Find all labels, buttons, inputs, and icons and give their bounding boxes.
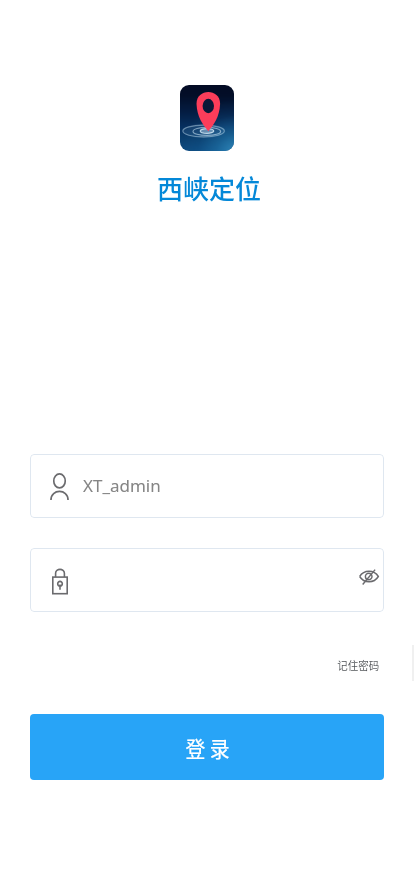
staticText: 西峡定位 (157, 169, 262, 207)
button[interactable]: Show password (30, 548, 384, 612)
button[interactable]: 记住密码 (328, 652, 380, 678)
button[interactable]: Show password (360, 563, 380, 597)
button[interactable]: XT_admin (30, 454, 384, 518)
staticText: 登 录 (185, 731, 229, 763)
staticText: 记住密码 (337, 657, 380, 673)
staticText: XT_admin (83, 474, 161, 497)
button[interactable]: 登 录 (30, 714, 384, 780)
